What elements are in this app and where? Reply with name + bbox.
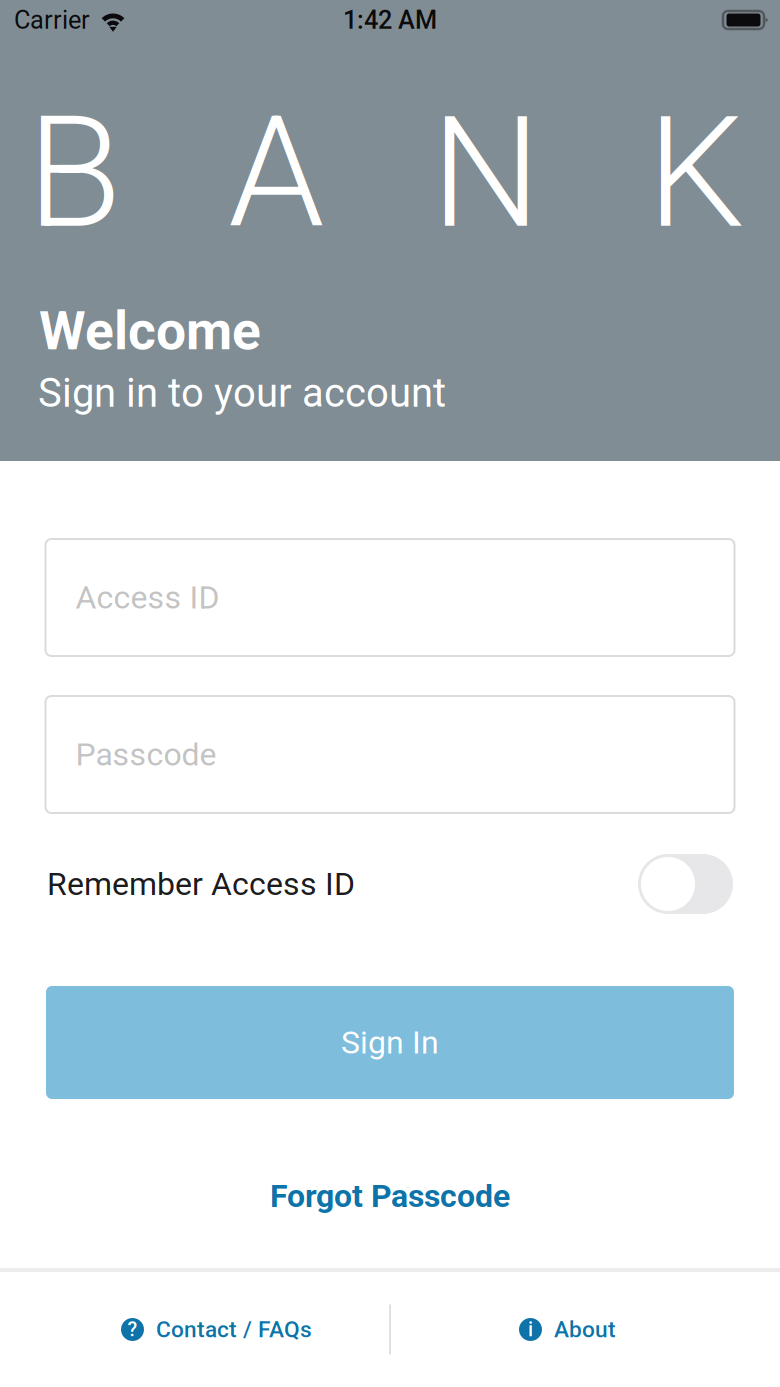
staticText: Welcome: [39, 300, 261, 362]
staticText: i: [528, 1318, 533, 1341]
staticText: Contact / FAQs: [156, 1316, 312, 1343]
staticText: Sign in to your account: [38, 370, 446, 416]
staticText: Carrier: [14, 5, 90, 35]
staticText: Remember Access ID: [47, 865, 355, 903]
staticText: Forgot Passcode: [270, 1177, 510, 1215]
staticText: About: [554, 1316, 616, 1343]
staticText: ?: [127, 1318, 137, 1341]
button[interactable]: Remember Access ID: [638, 854, 733, 914]
staticText: Access ID: [75, 579, 219, 616]
button[interactable]: Sign In: [46, 986, 734, 1099]
staticText: Sign In: [341, 1024, 439, 1061]
button[interactable]: i: [519, 1279, 616, 1379]
button[interactable]: Forgot Passcode: [46, 1176, 734, 1216]
staticText: BANK: [27, 82, 745, 264]
staticText: 1:42 AM: [343, 5, 437, 35]
staticText: Passcode: [75, 736, 216, 773]
button[interactable]: ?: [121, 1279, 312, 1379]
